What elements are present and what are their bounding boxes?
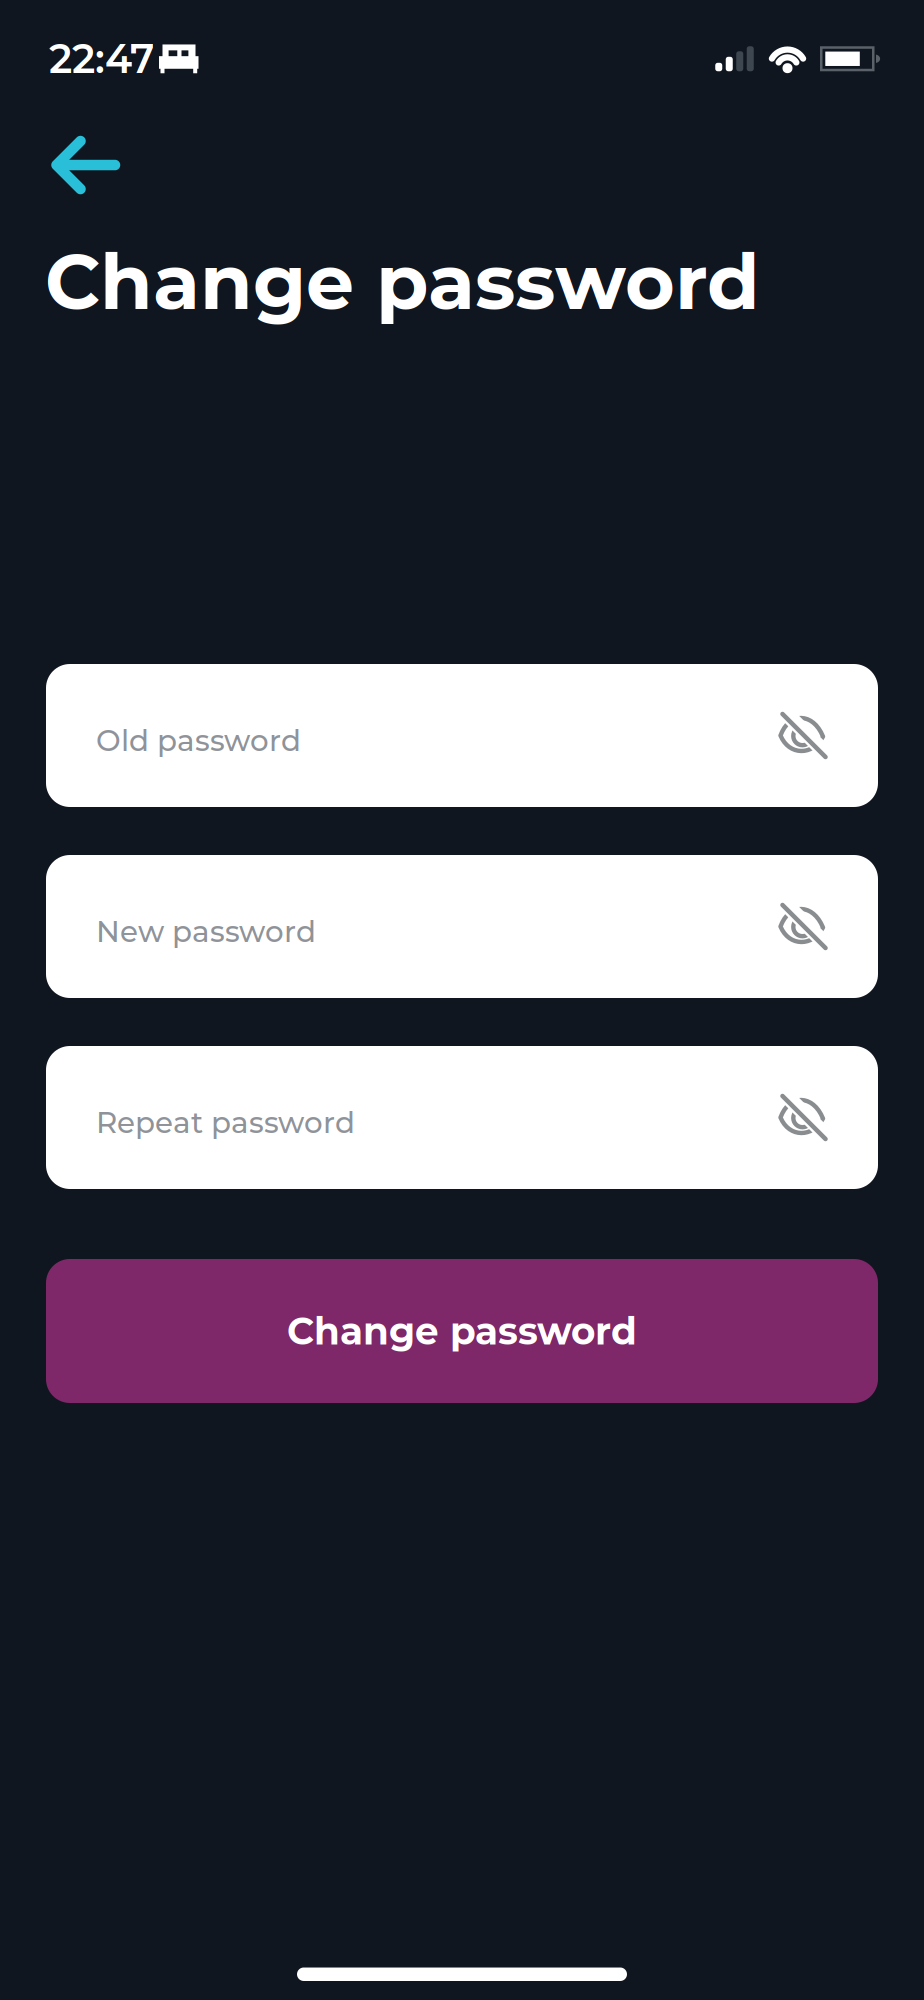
staticText: 22:47 [49, 35, 154, 82]
button[interactable]: Repeat password [46, 1046, 878, 1189]
staticText: Old password [96, 723, 301, 758]
staticText: New password [96, 914, 316, 949]
button[interactable]: Back [51, 135, 121, 194]
button[interactable]: Show password [775, 707, 831, 763]
staticText: Repeat password [96, 1105, 355, 1140]
button[interactable]: Show password [775, 1089, 831, 1145]
button[interactable]: New password [46, 855, 878, 998]
staticText: Change password [45, 236, 760, 327]
button[interactable]: Change password [46, 1259, 878, 1403]
button[interactable]: Show password [775, 898, 831, 954]
staticText: Change password [287, 1309, 637, 1353]
button[interactable]: Old password [46, 664, 878, 807]
